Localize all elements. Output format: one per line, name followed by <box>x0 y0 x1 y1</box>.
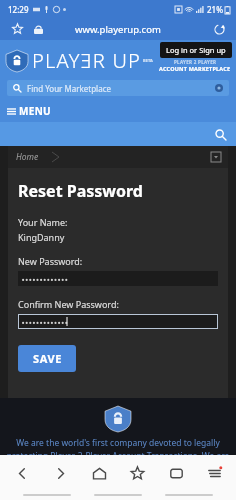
button[interactable]: Home <box>82 456 116 490</box>
staticText: MENU <box>19 104 51 118</box>
button[interactable]: Back <box>5 456 39 490</box>
button[interactable]: Home <box>16 151 49 163</box>
staticText: KingDanny <box>18 231 65 243</box>
staticText: PLAYER 2 PLAYER <box>174 59 217 65</box>
button[interactable]: Reload <box>214 24 225 35</box>
button[interactable]: Menu <box>197 456 231 490</box>
button[interactable]: Find Your Marketplace <box>7 80 229 96</box>
staticText: BETA <box>143 58 153 63</box>
staticText: SAVE <box>33 351 62 366</box>
staticText: 12:29 <box>8 4 29 15</box>
staticText: Your Name: <box>18 216 68 228</box>
staticText: Log in or Sign up <box>166 45 226 55</box>
staticText: www.playerup.com <box>75 23 161 36</box>
button[interactable] <box>18 314 218 329</box>
button[interactable] <box>18 271 218 286</box>
button[interactable]: Expand breadcrumb <box>211 152 221 162</box>
staticText: Confirm New Password: <box>18 298 119 310</box>
staticText: Home <box>16 151 39 163</box>
staticText: 21% <box>207 4 223 15</box>
button[interactable]: Tabs <box>159 456 193 490</box>
button[interactable]: Bookmarks <box>120 456 154 490</box>
staticText: Find Your Marketplace <box>27 83 111 94</box>
staticText: PLAYƎR UP <box>32 47 141 74</box>
staticText: We are the world's first company devoted… <box>6 437 230 455</box>
button[interactable]: Bookmark <box>12 24 23 35</box>
button[interactable]: MENU <box>0 100 236 122</box>
button[interactable]: SAVE <box>18 345 76 372</box>
button[interactable]: Forward <box>43 456 77 490</box>
staticText: Reset Password <box>18 180 143 202</box>
button[interactable]: Site security <box>34 25 43 34</box>
button[interactable]: Log in or Sign up <box>160 42 232 58</box>
button[interactable]: Search <box>215 129 226 140</box>
staticText: ACCOUNT MARKETPLACE <box>159 65 231 72</box>
staticText: New Password: <box>18 255 83 267</box>
